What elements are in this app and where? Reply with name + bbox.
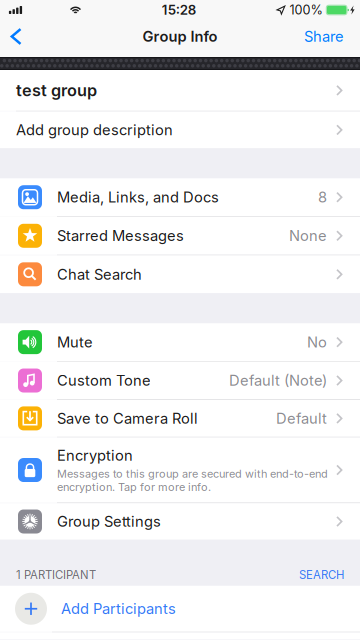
staticText: Save to Camera Roll	[57, 409, 198, 427]
button[interactable]: Add group description	[0, 111, 360, 148]
staticText: Share	[304, 28, 344, 45]
button[interactable]: Media, Links, and Docs	[0, 178, 360, 216]
staticText: Add group description	[16, 121, 173, 139]
button[interactable]: Back	[0, 19, 33, 54]
button[interactable]: SEARCH	[299, 568, 344, 582]
button[interactable]: Chat Search	[0, 255, 360, 293]
button[interactable]: Starred Messages	[0, 217, 360, 255]
staticText: Group Info	[142, 28, 217, 45]
staticText: Add Participants	[61, 600, 176, 618]
staticText: test group	[16, 81, 97, 100]
button[interactable]: Mute	[0, 323, 360, 361]
staticText: Encryption	[57, 446, 133, 464]
staticText: 15:28	[162, 2, 197, 18]
button[interactable]: Group Settings	[0, 503, 360, 540]
button[interactable]: test group	[0, 70, 360, 111]
staticText: 1 PARTICIPANT	[16, 568, 96, 582]
button[interactable]: Custom Tone	[0, 362, 360, 399]
staticText: Default (Note)	[229, 372, 327, 389]
button[interactable]: Add Participants	[0, 586, 360, 632]
staticText: Default	[276, 409, 327, 427]
staticText: Mute	[57, 333, 93, 351]
staticText: Custom Tone	[57, 372, 151, 389]
staticText: Messages to this group are secured with …	[57, 467, 328, 494]
staticText: 8	[318, 188, 327, 206]
staticText: Media, Links, and Docs	[57, 188, 219, 206]
staticText: No	[307, 333, 327, 351]
button[interactable]: Encryption	[0, 437, 360, 502]
button[interactable]: Save to Camera Roll	[0, 400, 360, 437]
staticText: 100%	[289, 2, 322, 18]
staticText: None	[289, 227, 327, 245]
staticText: Chat Search	[57, 265, 142, 283]
staticText: Group Settings	[57, 513, 161, 530]
button[interactable]: Share	[288, 19, 360, 54]
staticText: Starred Messages	[57, 227, 184, 245]
staticText: SEARCH	[299, 568, 344, 582]
